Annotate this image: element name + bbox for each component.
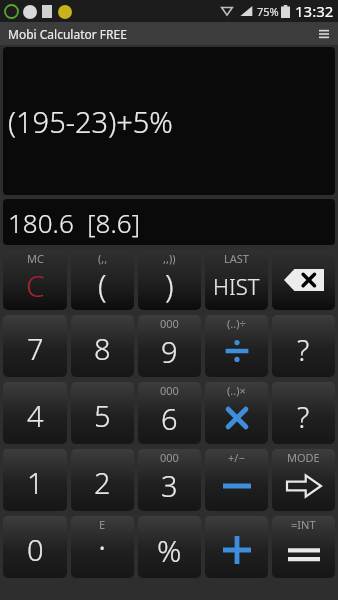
staticText: ·	[98, 524, 107, 570]
button[interactable]: 5	[71, 382, 134, 444]
button[interactable]: Mode	[272, 449, 335, 511]
button[interactable]: 180.6 [8.6]	[3, 199, 335, 245]
button[interactable]: ?	[272, 315, 335, 377]
button[interactable]: 2	[71, 449, 134, 511]
staticText: C	[26, 265, 45, 306]
button[interactable]: 000	[138, 382, 201, 444]
staticText: (..)÷	[227, 316, 246, 331]
staticText: 7	[27, 329, 44, 368]
staticText: +/−	[228, 450, 245, 465]
button[interactable]: 8	[71, 315, 134, 377]
button[interactable]: (195-23)+5%	[3, 47, 335, 195]
staticText: =INT	[291, 517, 316, 532]
button[interactable]: 1	[3, 449, 67, 511]
staticText: MC	[27, 251, 44, 266]
staticText: 75%	[257, 4, 279, 19]
staticText: 2	[94, 463, 111, 502]
staticText: ,,))	[163, 251, 176, 266]
button[interactable]: 4	[3, 382, 67, 444]
button[interactable]: LAST	[205, 250, 268, 310]
staticText: 9	[161, 332, 178, 371]
button[interactable]: Add	[205, 516, 268, 578]
button[interactable]: More options	[310, 22, 338, 45]
button[interactable]: 7	[3, 315, 67, 377]
staticText: LAST	[224, 251, 249, 266]
staticText: %	[157, 530, 182, 571]
staticText: Mobi Calculator FREE	[8, 26, 127, 42]
staticText: HIST	[213, 271, 260, 301]
staticText: (	[98, 264, 107, 306]
staticText: (,,	[98, 251, 108, 266]
staticText: 000	[160, 316, 179, 331]
staticText: ?	[297, 397, 310, 436]
button[interactable]: Backspace	[272, 250, 335, 310]
button[interactable]: Mobi Calculator FREE	[0, 22, 338, 45]
staticText: (..)×	[227, 383, 246, 398]
button[interactable]: (,,	[71, 250, 134, 310]
staticText: )	[165, 264, 174, 306]
staticText: ?	[297, 330, 310, 369]
button[interactable]: 000	[138, 449, 201, 511]
button[interactable]: Multiply	[205, 382, 268, 444]
staticText: 000	[160, 383, 179, 398]
staticText: 0	[27, 530, 44, 569]
button[interactable]: E	[71, 516, 134, 578]
staticText: MODE	[287, 450, 320, 465]
staticText: (195-23)+5%	[8, 102, 173, 141]
staticText: 180.6 [8.6]	[8, 205, 140, 240]
button[interactable]: %	[138, 516, 201, 578]
staticText: E	[99, 517, 106, 532]
staticText: 13:32	[295, 1, 334, 21]
button[interactable]: 0	[3, 516, 67, 578]
staticText: 4	[27, 396, 44, 435]
button[interactable]: ?	[272, 382, 335, 444]
staticText: 3	[161, 466, 178, 505]
staticText: 6	[161, 399, 178, 438]
staticText: 1	[27, 463, 44, 502]
button[interactable]: MC	[3, 250, 67, 310]
button[interactable]: Equals	[272, 516, 335, 578]
button[interactable]: Divide	[205, 315, 268, 377]
staticText: 5	[94, 396, 111, 435]
staticText: 000	[160, 450, 179, 465]
button[interactable]: ,,))	[138, 250, 201, 310]
button[interactable]: Subtract	[205, 449, 268, 511]
button[interactable]: 000	[138, 315, 201, 377]
staticText: 8	[94, 329, 111, 368]
